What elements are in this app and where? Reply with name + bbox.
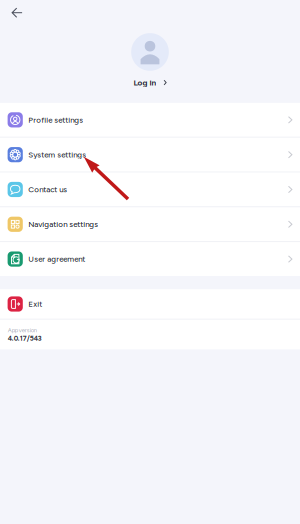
staticText: 4.0.17/543 xyxy=(8,334,42,343)
staticText: Navigation settings xyxy=(28,219,98,229)
button[interactable]: Navigation settings xyxy=(0,207,300,241)
button[interactable]: Exit xyxy=(0,289,300,319)
staticText: System settings xyxy=(28,150,86,159)
button[interactable]: Log in xyxy=(129,71,171,89)
button[interactable]: System settings xyxy=(0,138,300,172)
staticText: Exit xyxy=(28,299,42,309)
button[interactable]: Contact us xyxy=(0,172,300,206)
staticText: App version xyxy=(8,327,37,334)
staticText: Contact us xyxy=(28,185,67,194)
staticText: Profile settings xyxy=(28,115,83,125)
button[interactable]: Profile settings xyxy=(0,103,300,137)
button[interactable]: Back xyxy=(6,2,28,23)
staticText: Log in xyxy=(133,78,156,87)
staticText: User agreement xyxy=(28,254,85,264)
button[interactable]: User agreement xyxy=(0,242,300,276)
